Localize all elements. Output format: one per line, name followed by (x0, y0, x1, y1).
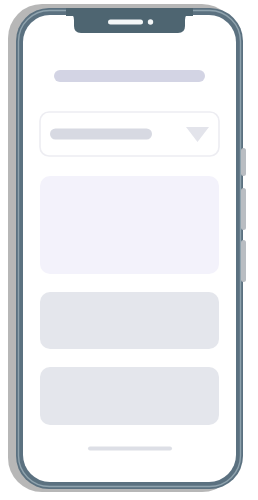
button[interactable]: Title (54, 70, 205, 82)
button[interactable]: Select option (40, 112, 219, 156)
